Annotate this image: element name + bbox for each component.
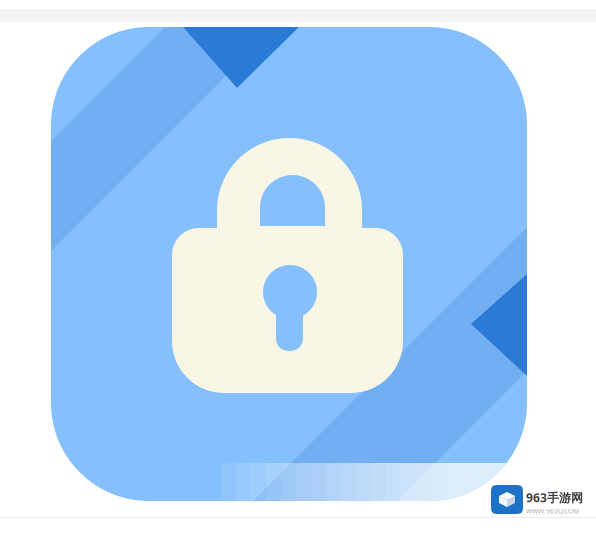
staticText: WWW.963Q.COM <box>526 506 579 515</box>
button[interactable]: 963 手游网 <box>491 485 583 514</box>
staticText: 963手游网 <box>526 490 583 505</box>
